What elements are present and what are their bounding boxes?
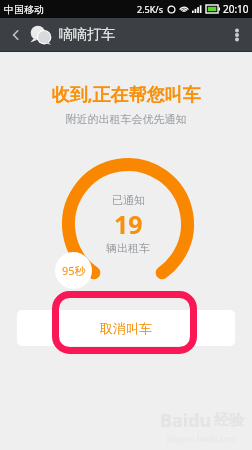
staticText: 95秒 (62, 263, 86, 278)
staticText: 取消叫车 (100, 320, 152, 336)
staticText: 19 (114, 207, 143, 241)
staticText: 收到,正在帮您叫车 (0, 82, 252, 107)
staticText: 附近的出租车会优先通知 (0, 112, 252, 126)
staticText: 已通知 (112, 193, 145, 207)
staticText: Baidu (160, 408, 212, 433)
button[interactable]: 取消叫车 (17, 310, 235, 346)
staticText: 20:10 (223, 2, 249, 16)
staticText: 嘀嘀打车 (59, 26, 115, 44)
staticText: 中国移动 (4, 3, 44, 16)
button[interactable]: Back (6, 25, 26, 45)
staticText: 辆出租车 (106, 241, 150, 255)
staticText: 经验 (214, 411, 244, 430)
staticText: 2.5K/s (137, 3, 163, 15)
button[interactable]: More options (222, 20, 252, 50)
